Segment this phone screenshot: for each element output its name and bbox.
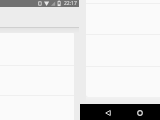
button[interactable]: Back — [102, 104, 114, 120]
staticText: 22:17 — [64, 0, 77, 7]
button[interactable]: Home — [134, 104, 146, 120]
